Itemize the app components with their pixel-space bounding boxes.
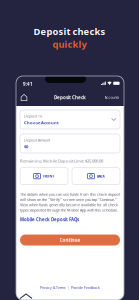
staticText: Choose Account [24,120,59,125]
staticText: quickly [52,38,86,50]
button[interactable]: Privacy & Terms [40,285,66,290]
staticText: Provide Feedback [71,285,100,290]
button[interactable]: FRONT [20,168,68,185]
staticText: Remaining Mobile Deposit Limit: $25,000.… [20,158,103,164]
staticText: 9:41 [23,81,33,87]
staticText: $0 [24,144,28,149]
staticText: FRONT [42,174,54,179]
button[interactable]: Deposit To [20,110,120,129]
staticText: Accounts [104,95,119,100]
staticText: Privacy & Terms [40,285,66,290]
staticText: Continue [59,237,80,243]
staticText: BACK [96,174,104,179]
staticText: Deposit checks [33,25,105,38]
staticText: | [67,285,69,290]
button[interactable]: Home [16,89,32,106]
button[interactable]: BACK [72,168,120,185]
staticText: Deposit To [24,113,42,119]
staticText: The details when you can use funds from … [20,192,120,213]
button[interactable]: Deposit Amount [20,134,120,153]
staticText: Mobile Check Deposit FAQs [20,217,79,222]
button[interactable]: Accounts [102,89,122,106]
staticText: Deposit Amount [24,137,50,143]
button[interactable]: Continue [20,234,120,245]
staticText: Deposit Check [54,94,86,101]
button[interactable]: Mobile Check Deposit FAQs [20,217,79,222]
button[interactable]: Provide Feedback [71,285,100,290]
